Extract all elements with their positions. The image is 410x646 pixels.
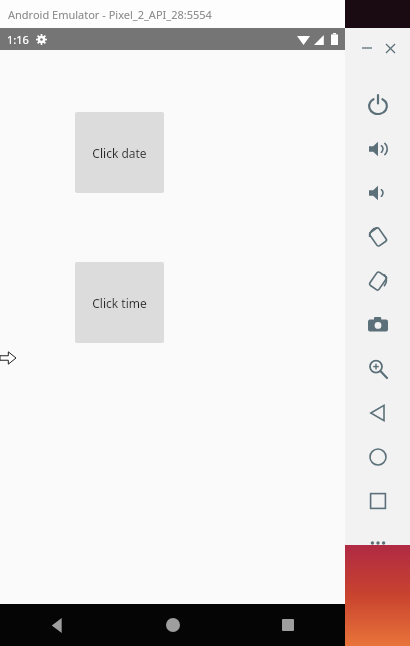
button[interactable]: Click date [75, 112, 164, 193]
staticText: 1:16 [7, 32, 29, 47]
button[interactable]: Click time [75, 262, 164, 343]
button[interactable]: Recents [230, 604, 345, 646]
button[interactable]: Close [379, 37, 401, 59]
button[interactable]: Screenshot [363, 310, 393, 340]
button[interactable]: Back [0, 604, 115, 646]
button[interactable]: Power [363, 90, 393, 120]
button[interactable]: More [363, 528, 393, 558]
button[interactable]: Minimize [356, 37, 378, 59]
staticText: Android Emulator - Pixel_2_API_28:5554 [8, 7, 212, 22]
button[interactable]: Home [115, 604, 230, 646]
button[interactable]: Back [363, 398, 393, 428]
button[interactable]: Rotate right [363, 266, 393, 296]
button[interactable]: Volume down [363, 178, 393, 208]
button[interactable]: Rotate left [363, 222, 393, 252]
button[interactable]: Overview [363, 486, 393, 516]
staticText: Click time [92, 295, 147, 311]
button[interactable]: Volume up [363, 134, 393, 164]
button[interactable]: Home [363, 442, 393, 472]
staticText: Click date [92, 145, 147, 161]
button[interactable]: Zoom [363, 354, 393, 384]
